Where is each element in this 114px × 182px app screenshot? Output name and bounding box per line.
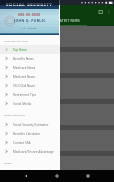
button[interactable]: Recents	[83, 171, 93, 181]
staticText: Prepare for Retirement	[2, 53, 42, 58]
staticText: supplies and services. Time go	[2, 143, 44, 147]
staticText: you throughout this journey on.	[2, 65, 46, 69]
staticText: our Security account to plan your	[2, 91, 48, 95]
staticText: argue to mind the needs of our	[2, 34, 45, 38]
staticText: Social Media	[13, 102, 32, 106]
staticText: Helpful Resources	[4, 113, 26, 116]
button[interactable]: Benefits News	[0, 54, 60, 63]
staticText: Social Security News	[12, 8, 53, 14]
staticText: SSI COLA News	[13, 84, 35, 88]
button[interactable]: Home	[52, 171, 62, 181]
staticText: Contact SSA	[13, 141, 31, 145]
button[interactable]: Prepare for Retirement	[0, 52, 114, 73]
button[interactable]: SSI COLA News	[0, 81, 60, 90]
staticText: one of the most important ways	[2, 86, 46, 90]
staticText: SOCIAL SECURITY	[6, 2, 53, 8]
staticText: and submit to put online which	[2, 39, 45, 43]
staticText: U.S. CITIZEN	[21, 26, 38, 29]
button[interactable]: Social Security Estimator	[0, 120, 60, 129]
button[interactable]: Retirement Tips	[0, 90, 60, 99]
staticText: Videos	[4, 161, 12, 164]
staticText: 000-00-0000	[18, 12, 41, 16]
button[interactable]: LATEST NEWS	[50, 17, 87, 26]
staticText: Benefits News	[13, 57, 34, 61]
button[interactable]: Medicaid News	[0, 72, 60, 81]
staticText: Retirement Tips	[13, 93, 36, 97]
button[interactable]: urity Month	[0, 130, 114, 151]
button[interactable]: Medicare News	[0, 63, 60, 72]
button[interactable]: Initial	[0, 26, 114, 47]
staticText: urity Month	[2, 131, 23, 136]
staticText: Social Security News	[4, 39, 28, 42]
button[interactable]: ing Warranty type	[0, 156, 114, 170]
staticText: Initial	[2, 27, 13, 32]
button[interactable]: Social Media	[0, 99, 60, 108]
button[interactable]: Top News	[0, 45, 60, 54]
staticText: Medicare News	[13, 66, 36, 70]
button[interactable]: More options	[105, 8, 112, 15]
staticText: you to light and is dedicated	[2, 138, 41, 142]
staticText: Top News	[13, 48, 28, 52]
staticText: JOHN Q. PUBLIC	[14, 18, 46, 23]
button[interactable]: l Benefit Status is right on	[0, 104, 114, 125]
staticText: Medicare/Tricare Advantage	[13, 150, 54, 154]
button[interactable]: Benefits Calculator	[0, 129, 60, 138]
button[interactable]: ial Security Account	[0, 78, 114, 99]
button[interactable]: Medicare/Tricare Advantage	[0, 147, 60, 156]
staticText: urity details, and highlight can	[2, 112, 44, 116]
button[interactable]: Search	[96, 7, 105, 16]
button[interactable]: Back	[21, 171, 31, 181]
staticText: LATEST NEWS	[58, 19, 80, 23]
staticText: Benefits Calculator	[13, 132, 41, 136]
staticText: Medicaid News	[13, 75, 35, 79]
staticText: Social Security Estimator	[13, 123, 49, 127]
button[interactable]: Contact SSA	[0, 138, 60, 147]
